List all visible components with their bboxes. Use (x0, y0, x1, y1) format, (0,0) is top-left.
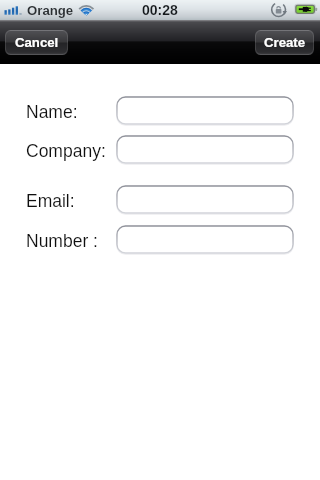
staticText: Orange (27, 3, 74, 18)
staticText: Create (264, 35, 306, 50)
button[interactable]: Cancel (5, 30, 68, 55)
staticText: Number : (26, 231, 98, 251)
button[interactable]: Company: text field (116, 135, 294, 164)
staticText: Email: (26, 191, 75, 211)
button[interactable]: Name: text field (116, 96, 294, 125)
staticText: Name: (26, 102, 78, 122)
staticText: 00:28 (142, 2, 178, 18)
button[interactable]: Create (255, 30, 314, 55)
button[interactable]: Number : text field (116, 225, 294, 254)
staticText: Cancel (15, 35, 59, 50)
button[interactable]: Email: text field (116, 185, 294, 214)
staticText: Company: (26, 141, 106, 161)
